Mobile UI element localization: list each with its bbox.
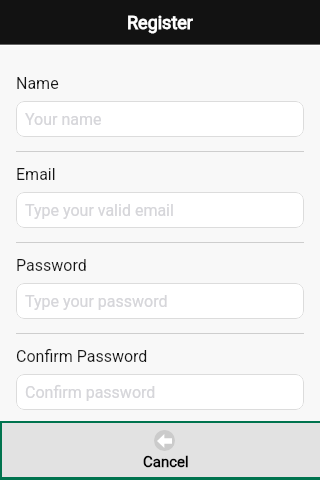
staticText: Email [16, 165, 56, 184]
staticText: Your name [25, 110, 102, 129]
button[interactable]: Cancel [2, 423, 320, 477]
staticText: Name [16, 74, 59, 93]
staticText: Register [127, 12, 193, 33]
staticText: Type your password [25, 292, 168, 311]
staticText: Password [16, 256, 87, 275]
staticText: Type your valid email [25, 201, 174, 220]
button[interactable]: Type your valid email [16, 192, 304, 228]
staticText: Confirm Password [16, 347, 148, 366]
button[interactable]: Your name [16, 101, 304, 137]
button[interactable]: Confirm password [16, 374, 304, 410]
button[interactable]: Type your password [16, 283, 304, 319]
staticText: Cancel [143, 453, 189, 471]
staticText: Confirm password [25, 383, 156, 402]
